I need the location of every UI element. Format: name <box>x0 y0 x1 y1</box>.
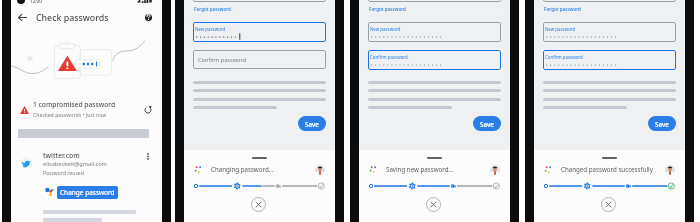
staticText: Confirm password <box>370 54 408 60</box>
button[interactable]: Close <box>426 197 441 212</box>
button[interactable]: New password <box>368 22 501 42</box>
staticText: elisabeckett@gmail.com <box>43 160 107 168</box>
button[interactable]: Back <box>16 11 28 23</box>
button[interactable]: Save <box>473 116 501 131</box>
staticText: Checked passwords • Just now <box>33 111 107 118</box>
button[interactable]: New password <box>193 22 326 42</box>
staticText: Saving new password... <box>386 165 454 173</box>
staticText: twitter.com <box>43 151 80 160</box>
staticText: New password <box>195 26 226 32</box>
staticText: Save <box>305 120 319 128</box>
staticText: 1 compromised password <box>33 100 116 109</box>
button[interactable]: Save <box>298 116 326 131</box>
staticText: 12:00 <box>30 0 42 4</box>
staticText: Password reused <box>43 170 84 177</box>
staticText: New password <box>370 26 401 32</box>
staticText: Confirm password <box>545 54 583 60</box>
staticText: Forgot password <box>194 6 231 12</box>
button[interactable]: Confirm password <box>193 50 326 69</box>
button[interactable]: Help <box>142 11 154 23</box>
staticText: Forgot password <box>369 6 406 12</box>
staticText: Confirm password <box>198 56 247 64</box>
button[interactable]: Close <box>601 197 616 212</box>
button[interactable]: Save <box>648 116 676 131</box>
staticText: Changing password... <box>211 165 274 173</box>
button[interactable]: Confirm password <box>368 50 501 70</box>
button[interactable]: Confirm password <box>543 50 676 70</box>
staticText: Change password <box>60 188 115 197</box>
button[interactable]: More options <box>142 150 154 162</box>
button[interactable]: Change password <box>57 186 118 199</box>
staticText: New password <box>545 26 576 32</box>
staticText: Save <box>655 120 669 128</box>
staticText: Save <box>480 120 494 128</box>
staticText: Changed password successfully <box>561 165 653 173</box>
button[interactable]: Refresh <box>141 103 155 117</box>
button[interactable]: New password <box>543 22 676 42</box>
staticText: Forgot password <box>544 6 581 12</box>
button[interactable]: Close <box>251 197 266 212</box>
staticText: Check passwords <box>36 12 109 24</box>
